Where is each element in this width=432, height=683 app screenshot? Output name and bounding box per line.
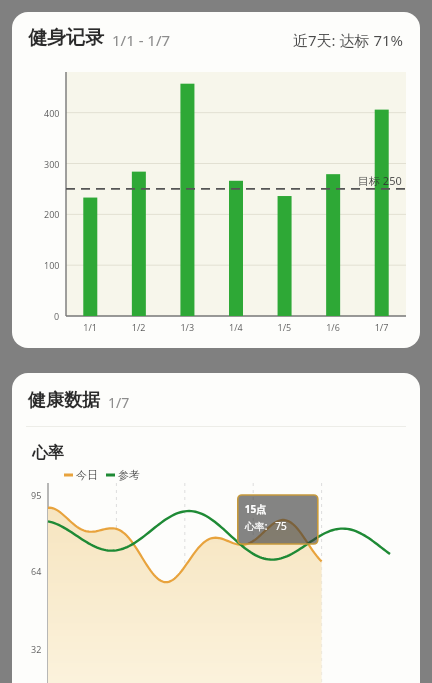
button[interactable]: 健身记录 [12,12,420,348]
staticText: 健身记录 [28,26,104,50]
staticText: 心率 [32,443,64,463]
staticText: 近7天: 达标 71% [293,30,404,50]
button[interactable]: 健康数据 [12,373,420,683]
staticText: 健康数据 [28,389,100,412]
staticText: 1/7 [108,393,130,412]
staticText: 1/1 - 1/7 [112,30,171,50]
